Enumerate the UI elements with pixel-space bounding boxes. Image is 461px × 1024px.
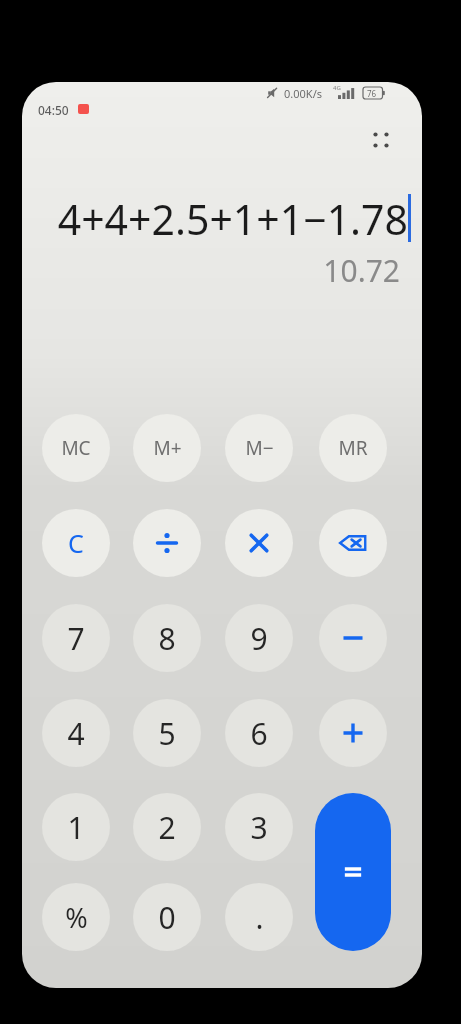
- button[interactable]: 4: [42, 699, 110, 767]
- staticText: 4: [67, 713, 85, 754]
- button[interactable]: Backspace: [319, 509, 387, 577]
- staticText: 6: [250, 713, 268, 754]
- button[interactable]: MC: [42, 414, 110, 482]
- staticText: %: [65, 899, 88, 936]
- staticText: 7: [67, 618, 85, 659]
- button[interactable]: C: [42, 509, 110, 577]
- button[interactable]: .: [225, 883, 293, 951]
- staticText: 5: [158, 713, 176, 754]
- button[interactable]: 5: [133, 699, 201, 767]
- staticText: 8: [158, 618, 176, 659]
- button[interactable]: %: [42, 883, 110, 951]
- staticText: 1: [67, 807, 85, 848]
- button[interactable]: 1: [42, 793, 110, 861]
- staticText: 76: [367, 88, 377, 99]
- button[interactable]: Plus: [319, 699, 387, 767]
- button[interactable]: 2: [133, 793, 201, 861]
- staticText: 2: [158, 807, 176, 848]
- staticText: 9: [250, 618, 268, 659]
- staticText: M−: [245, 435, 274, 461]
- staticText: MC: [61, 435, 91, 461]
- button[interactable]: More options: [359, 118, 403, 162]
- button[interactable]: Equals: [315, 793, 391, 951]
- button[interactable]: 7: [42, 604, 110, 672]
- staticText: 3: [250, 807, 268, 848]
- staticText: 0.00K/s: [284, 86, 322, 101]
- button[interactable]: 9: [225, 604, 293, 672]
- staticText: M+: [153, 435, 182, 461]
- staticText: C: [68, 526, 84, 560]
- button[interactable]: M−: [225, 414, 293, 482]
- staticText: .: [255, 897, 264, 938]
- button[interactable]: 0: [133, 883, 201, 951]
- button[interactable]: 8: [133, 604, 201, 672]
- staticText: 10.72: [323, 250, 400, 290]
- staticText: 04:50: [38, 102, 69, 118]
- staticText: 4+4+2.5+1+1−1.78: [57, 191, 408, 247]
- button[interactable]: M+: [133, 414, 201, 482]
- button[interactable]: 6: [225, 699, 293, 767]
- button[interactable]: Divide: [133, 509, 201, 577]
- button[interactable]: Minus: [319, 604, 387, 672]
- button[interactable]: 3: [225, 793, 293, 861]
- staticText: 0: [158, 897, 176, 938]
- staticText: 4G: [333, 84, 341, 92]
- button[interactable]: MR: [319, 414, 387, 482]
- button[interactable]: Multiply: [225, 509, 293, 577]
- staticText: MR: [338, 435, 368, 461]
